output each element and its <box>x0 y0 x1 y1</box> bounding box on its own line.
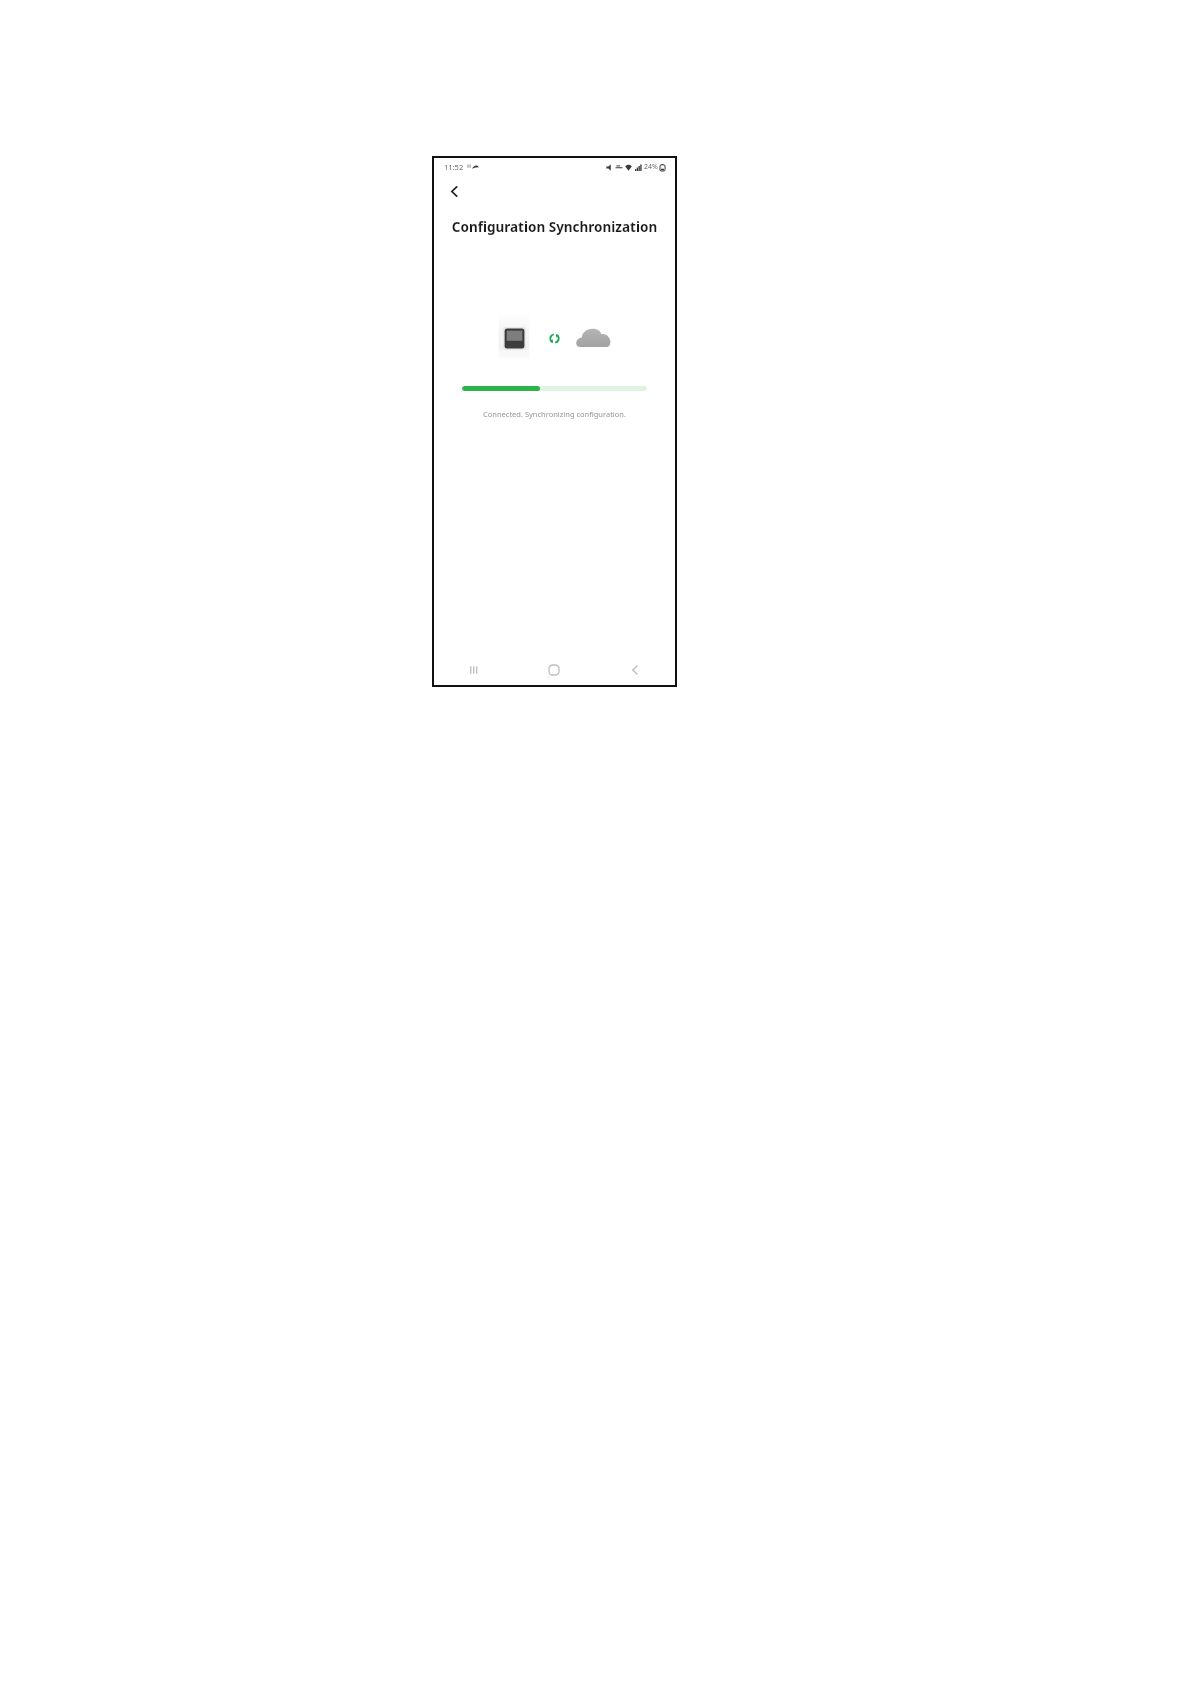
staticText: Connected. Synchronizing configuration. <box>434 409 675 419</box>
button[interactable]: Back <box>618 655 652 685</box>
staticText: 24% <box>644 162 658 172</box>
button[interactable]: Home <box>537 655 571 685</box>
staticText: Configuration Synchronization <box>434 218 675 236</box>
staticText: 11:52 <box>444 162 464 172</box>
button[interactable]: Recents <box>457 655 491 685</box>
button[interactable]: Back <box>442 179 466 203</box>
